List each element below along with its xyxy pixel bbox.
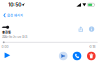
button[interactable]: 음성 메시지 [1,11,25,19]
button[interactable]: Speaker [59,52,67,60]
staticText: -0:18 [88,45,95,49]
staticText: 10:50 [8,2,21,8]
button[interactable]: Share [77,25,85,33]
button[interactable]: Call back [73,52,81,60]
staticText: 2024년 6월 2일 오후 10:15 [2,35,27,39]
staticText: 홍길동 [2,30,11,35]
staticText: 음성 메시지 [7,13,23,18]
button[interactable]: Details [88,25,95,33]
button[interactable]: Delete [87,52,96,60]
button[interactable]: Play [3,51,12,60]
staticText: 0:00 [2,45,9,49]
